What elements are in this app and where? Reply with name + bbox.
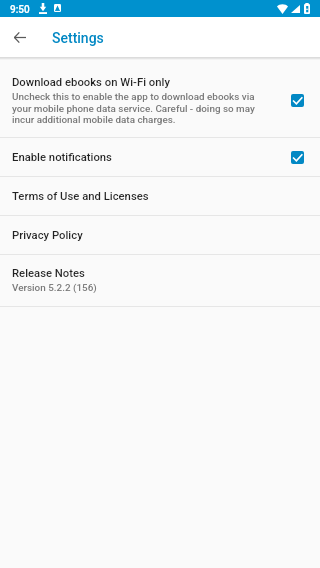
button[interactable]: Privacy Policy <box>0 216 320 254</box>
staticText: Release Notes <box>12 267 85 280</box>
button[interactable]: Enable notifications <box>0 138 320 176</box>
button[interactable]: Terms of Use and Licenses <box>0 177 320 215</box>
staticText: Terms of Use and Licenses <box>12 190 310 203</box>
staticText: Enable notifications <box>12 151 281 164</box>
staticText: Uncheck this to enable the app to downlo… <box>12 91 260 125</box>
staticText: Download ebooks on Wi-Fi only <box>12 76 170 89</box>
other: Checked <box>291 151 304 164</box>
staticText: Version 5.2.2 (156) <box>12 282 97 294</box>
button[interactable]: Release Notes <box>0 255 320 306</box>
button[interactable]: Download ebooks on Wi-Fi only <box>0 57 320 137</box>
staticText: 9:50 <box>10 4 30 16</box>
staticText: Settings <box>52 30 104 46</box>
other: Checked <box>291 94 304 107</box>
button[interactable]: Back <box>6 23 34 51</box>
staticText: Privacy Policy <box>12 229 310 242</box>
